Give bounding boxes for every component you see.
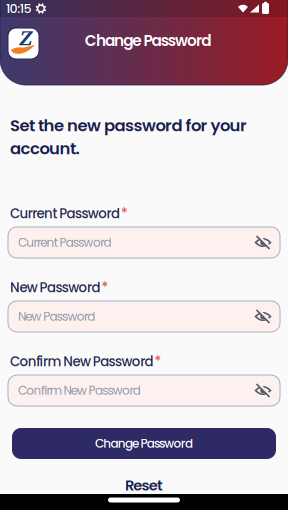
staticText: 10:15 xyxy=(6,0,31,17)
staticText: * xyxy=(101,278,108,297)
staticText: New Password xyxy=(10,278,100,297)
staticText: Current Password xyxy=(18,234,111,251)
staticText: * xyxy=(155,352,162,371)
staticText: Z xyxy=(19,24,32,51)
button[interactable]: Current Password xyxy=(8,227,280,258)
button[interactable]: Change Password xyxy=(12,428,276,459)
staticText: Current Password xyxy=(10,204,120,223)
staticText: * xyxy=(121,204,128,223)
staticText: Confirm New Password xyxy=(18,382,141,399)
button[interactable]: Confirm New Password xyxy=(8,375,280,406)
button[interactable]: Reset xyxy=(125,475,163,495)
staticText: Change Password xyxy=(95,435,193,452)
button[interactable]: New Password xyxy=(8,301,280,332)
staticText: Set the new password for your xyxy=(10,114,247,137)
staticText: Reset xyxy=(125,475,163,495)
staticText: Change Password xyxy=(85,30,211,51)
staticText: Confirm New Password xyxy=(10,352,154,371)
staticText: account. xyxy=(10,137,79,160)
staticText: New Password xyxy=(18,308,95,325)
